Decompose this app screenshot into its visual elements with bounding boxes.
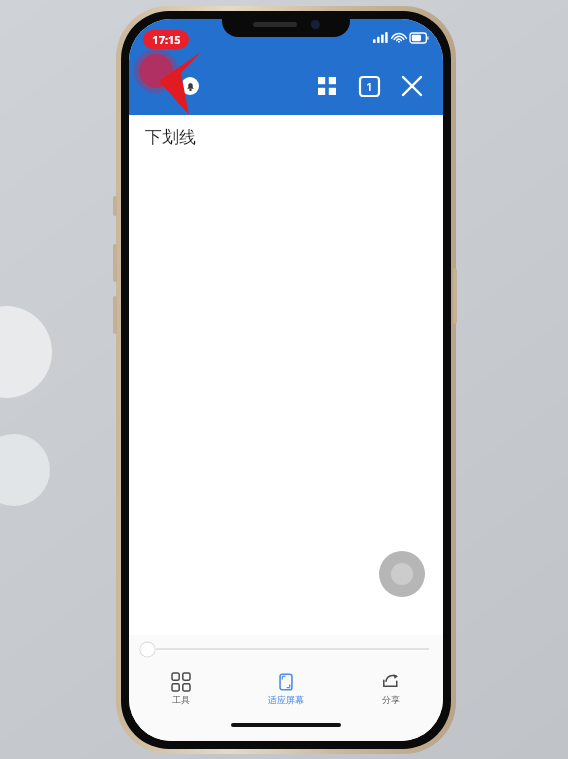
staticText: 适应屏幕 xyxy=(268,694,304,705)
staticText: 1 xyxy=(366,79,373,94)
button[interactable]: 工具 xyxy=(129,669,233,709)
staticText: 分享 xyxy=(382,694,400,705)
button[interactable]: Grid view xyxy=(309,68,345,104)
button[interactable]: Close xyxy=(393,67,431,105)
button[interactable]: Notifications xyxy=(181,77,199,95)
button[interactable]: 适应屏幕 xyxy=(233,669,338,709)
staticText: 下划线 xyxy=(145,127,196,148)
button[interactable]: Page count xyxy=(351,68,387,104)
staticText: 工具 xyxy=(172,694,190,705)
button[interactable]: Zoom slider xyxy=(139,641,156,658)
staticText: 17:15 xyxy=(152,32,181,47)
button[interactable]: Back xyxy=(141,69,175,103)
button[interactable]: Adjust xyxy=(379,551,425,597)
button[interactable]: 分享 xyxy=(338,669,443,709)
